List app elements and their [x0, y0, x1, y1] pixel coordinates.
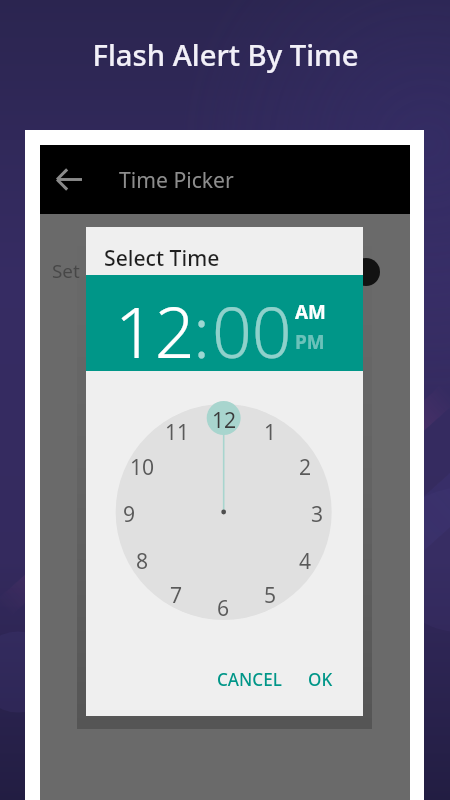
staticText: 1 — [264, 417, 277, 446]
button[interactable]: PM — [295, 329, 325, 355]
staticText: 10 — [130, 452, 155, 481]
staticText: 7 — [170, 580, 183, 609]
staticText: 3 — [311, 499, 324, 528]
staticText: 8 — [136, 546, 149, 575]
button[interactable]: Back — [50, 160, 89, 199]
staticText: Select Time — [104, 243, 220, 272]
staticText: : — [193, 283, 211, 378]
button[interactable]: 12 — [115, 283, 195, 378]
button[interactable]: OK — [301, 665, 340, 693]
staticText: 4 — [299, 546, 312, 575]
button[interactable]: AM — [295, 299, 326, 325]
staticText: 11 — [165, 417, 190, 446]
staticText: 6 — [217, 593, 230, 622]
staticText: Time Picker — [119, 165, 234, 194]
staticText: 9 — [123, 499, 136, 528]
button[interactable]: 00 — [212, 283, 292, 378]
button[interactable]: CANCEL — [216, 665, 282, 693]
staticText: 2 — [299, 452, 312, 481]
staticText: Flash Alert By Time — [92, 35, 359, 75]
button[interactable]: Clock dial — [86, 227, 363, 716]
staticText: 12 — [212, 405, 237, 434]
staticText: OK — [308, 668, 333, 691]
staticText: Set F — [52, 258, 95, 284]
staticText: 5 — [264, 580, 277, 609]
staticText: CANCEL — [217, 668, 282, 691]
